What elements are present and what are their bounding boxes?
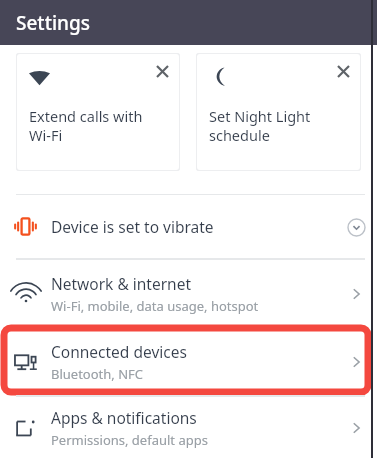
staticText: Device is set to vibrate (51, 216, 335, 237)
button[interactable]: Apps & notifications (0, 397, 377, 458)
staticText: Wi-Fi, mobile, data usage, hotspot (51, 297, 259, 315)
staticText: Bluetooth, NFC (51, 365, 144, 383)
button[interactable]: Dismiss Wi-Fi suggestion (151, 60, 173, 82)
button[interactable]: Extend calls with Wi-Fi (16, 53, 180, 171)
staticText: Extend calls with Wi-Fi (29, 106, 143, 145)
staticText: Connected devices (51, 341, 187, 362)
button[interactable]: Dismiss Night Light suggestion (332, 60, 354, 82)
staticText: Network & internet (51, 273, 191, 294)
staticText: Permissions, default apps (51, 431, 208, 449)
button[interactable]: Device is set to vibrate (0, 195, 377, 258)
button[interactable]: Set Night Light schedule (196, 53, 361, 171)
button[interactable]: Expand vibrate details (345, 216, 367, 238)
button[interactable]: Network & internet (0, 260, 377, 327)
button[interactable]: Connected devices (0, 328, 377, 395)
staticText: Settings (16, 10, 90, 36)
staticText: Apps & notifications (51, 407, 197, 428)
staticText: Set Night Light schedule (209, 106, 311, 145)
